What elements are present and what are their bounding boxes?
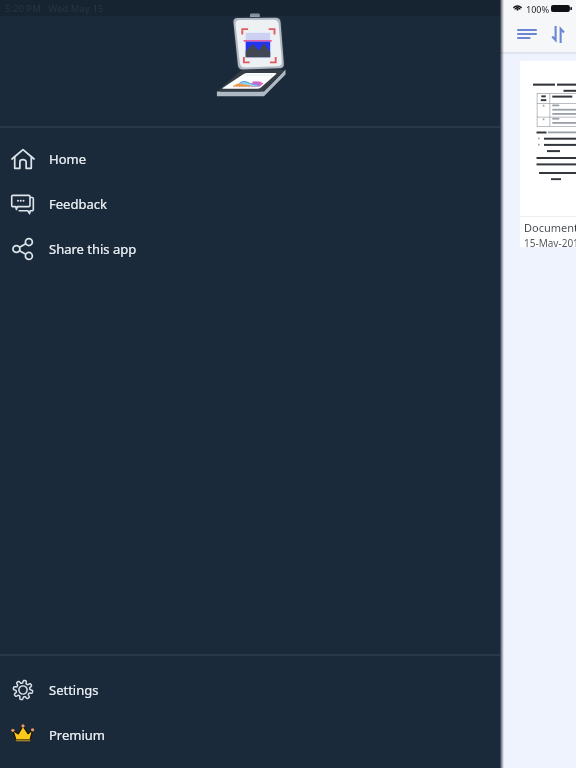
staticText: Share this app	[49, 240, 137, 258]
staticText: Premium	[49, 726, 106, 744]
button[interactable]: Feedback	[0, 181, 500, 226]
staticText: Document	[524, 220, 576, 235]
staticText: 100%	[526, 3, 550, 15]
button[interactable]: Premium	[0, 712, 500, 757]
staticText: 5:20 PM Wed May 15	[5, 2, 104, 15]
button[interactable]: Sort	[544, 19, 572, 49]
staticText: 15-May-2019	[524, 236, 576, 247]
staticText: Home	[49, 150, 86, 168]
button[interactable]: Settings	[0, 667, 500, 712]
staticText: Feedback	[49, 195, 107, 213]
button[interactable]: Home	[0, 136, 500, 181]
button[interactable]: Document	[520, 61, 576, 247]
staticText: Settings	[49, 681, 99, 699]
button[interactable]: Share this app	[0, 226, 500, 271]
button[interactable]: Layout	[507, 19, 547, 49]
